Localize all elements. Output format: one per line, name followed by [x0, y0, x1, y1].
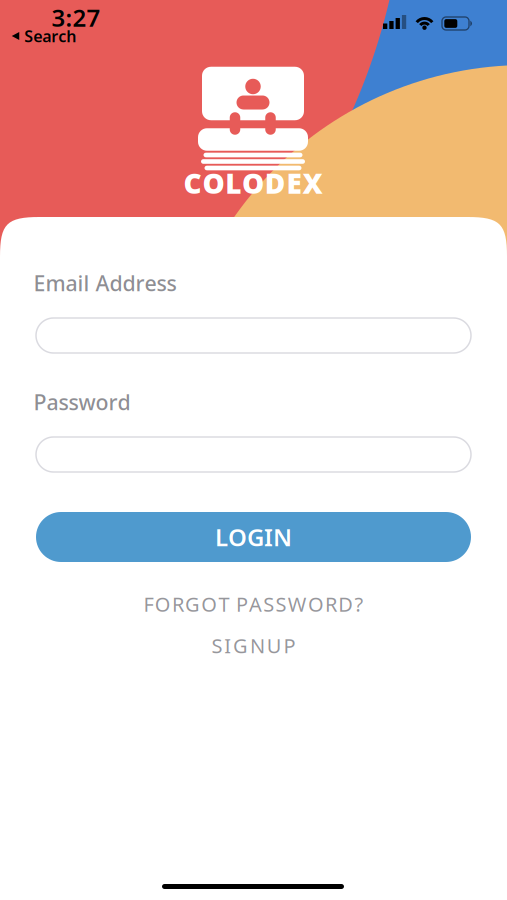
- staticText: D: [338, 591, 353, 617]
- staticText: N: [273, 521, 292, 553]
- staticText: X: [302, 164, 322, 202]
- staticText: W: [288, 591, 307, 617]
- staticText: P: [283, 632, 295, 659]
- staticText: O: [201, 591, 217, 617]
- staticText: G: [185, 591, 200, 617]
- button[interactable]: L: [36, 512, 471, 562]
- staticText: O: [155, 591, 171, 617]
- staticText: G: [247, 521, 264, 553]
- staticText: O: [228, 521, 247, 553]
- button[interactable]: S: [211, 632, 295, 659]
- staticText: E: [287, 164, 302, 202]
- staticText: O: [202, 164, 224, 202]
- staticText: D: [265, 164, 286, 202]
- staticText: Email Address: [33, 269, 176, 297]
- button[interactable]: F: [143, 591, 363, 617]
- staticText: O: [242, 164, 264, 202]
- staticText: Password: [33, 388, 130, 416]
- staticText: 3:27: [51, 2, 100, 33]
- staticText: O: [308, 591, 324, 617]
- staticText: C: [184, 164, 202, 202]
- staticText: R: [172, 591, 184, 617]
- staticText: Search: [24, 25, 76, 47]
- staticText: R: [325, 591, 337, 617]
- staticText: L: [215, 521, 228, 553]
- staticText: P: [236, 591, 248, 617]
- staticText: F: [143, 591, 153, 617]
- button[interactable]: Back to Search: [12, 25, 76, 47]
- staticText: I: [224, 632, 231, 659]
- staticText: I: [264, 521, 273, 553]
- staticText: S: [275, 591, 286, 617]
- staticText: ?: [354, 591, 363, 617]
- staticText: L: [225, 164, 241, 202]
- staticText: A: [249, 591, 262, 617]
- staticText: U: [267, 632, 282, 659]
- staticText: N: [250, 632, 265, 659]
- staticText: S: [211, 632, 222, 659]
- staticText: S: [263, 591, 274, 617]
- staticText: T: [218, 591, 229, 617]
- staticText: G: [233, 632, 248, 659]
